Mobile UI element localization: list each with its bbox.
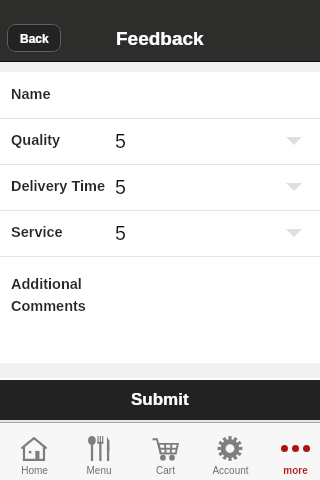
staticText: Delivery Time (11, 178, 106, 194)
staticText: Home (21, 465, 48, 476)
button[interactable]: Home (3, 423, 65, 480)
staticText: 5 (115, 222, 126, 244)
button[interactable]: Name (0, 72, 320, 118)
button[interactable]: Account (199, 423, 261, 480)
staticText: Comments (11, 298, 86, 314)
staticText: Additional (11, 276, 82, 292)
staticText: 5 (115, 130, 126, 152)
staticText: more (283, 465, 308, 476)
staticText: Account (212, 465, 249, 476)
button[interactable]: More (264, 423, 320, 480)
button[interactable]: Quality (0, 118, 320, 164)
staticText: Submit (131, 390, 189, 409)
staticText: Service (11, 224, 63, 240)
button[interactable]: Back (7, 24, 61, 52)
button[interactable]: Service (0, 210, 320, 256)
button[interactable]: Additional (0, 256, 320, 363)
staticText: Quality (11, 132, 61, 148)
staticText: Menu (86, 465, 112, 476)
staticText: Name (11, 86, 51, 102)
staticText: Back (20, 32, 49, 45)
button[interactable]: Cart (134, 423, 196, 480)
button[interactable]: Delivery Time (0, 164, 320, 210)
button[interactable]: Submit (0, 380, 320, 420)
staticText: Feedback (116, 28, 204, 49)
staticText: 5 (115, 176, 126, 198)
staticText: Cart (156, 465, 175, 476)
button[interactable]: Menu (68, 423, 130, 480)
